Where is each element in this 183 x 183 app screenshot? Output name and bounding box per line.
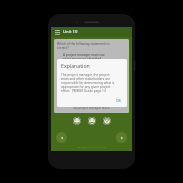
button[interactable]: Neutral answer	[87, 116, 96, 125]
button[interactable]: Flag answer	[102, 116, 111, 125]
staticText: Explanation	[61, 62, 90, 69]
button[interactable]: Next question	[116, 132, 127, 143]
staticText: My project manager result	[57, 106, 126, 110]
button[interactable]: A.	[57, 53, 126, 69]
staticText: A project manager must use exact process…	[63, 53, 105, 69]
staticText: Unit 10	[63, 29, 78, 35]
button[interactable]: Open navigation menu	[54, 29, 61, 36]
button[interactable]: Previous question	[56, 132, 67, 143]
staticText: Which of the following statements is cor…	[57, 42, 110, 50]
staticText: OK	[116, 98, 121, 103]
staticText: The project manager, the project team an…	[61, 73, 115, 93]
button[interactable]: OK	[114, 97, 123, 104]
staticText: A.	[57, 59, 60, 63]
button[interactable]: Like this answer	[72, 116, 81, 125]
staticText: Copyright 2019 ALL RIGHTS	[51, 146, 132, 149]
